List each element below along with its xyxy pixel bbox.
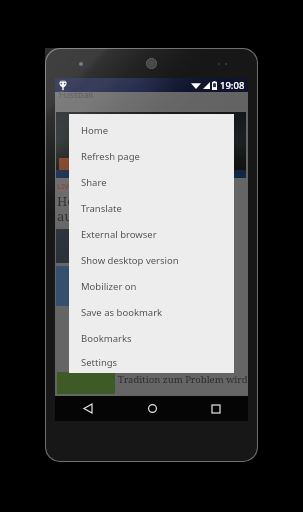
staticText: Home — [81, 124, 109, 137]
button[interactable]: Recent apps — [184, 396, 248, 421]
staticText: Refresh page — [81, 150, 140, 163]
button[interactable]: Home — [69, 117, 234, 143]
button[interactable]: Save as bookmark — [69, 299, 234, 325]
button[interactable]: Share — [69, 169, 234, 195]
button[interactable]: External browser — [69, 221, 234, 247]
staticText: Mobilizer on — [81, 280, 137, 293]
staticText: Settings — [81, 356, 118, 369]
staticText: Save as bookmark — [81, 306, 163, 319]
staticText: Heute Abend auf dem Platz — [57, 192, 142, 225]
staticText: Share — [81, 176, 107, 189]
button[interactable]: Tradition zum Problem wird — [55, 371, 248, 396]
button[interactable]: Refresh page — [69, 143, 234, 169]
staticText: External browser — [81, 228, 157, 241]
button[interactable]: Home — [120, 396, 184, 421]
staticText: LIVE — [57, 181, 74, 191]
staticText: 19:08 — [220, 79, 245, 92]
staticText: Fussball — [59, 88, 94, 100]
staticText: Translate — [81, 202, 122, 215]
button[interactable]: Bookmarks — [69, 325, 234, 351]
staticText: Show desktop version — [81, 254, 179, 267]
staticText: Tradition zum Problem wird — [118, 373, 248, 386]
button[interactable]: Show desktop version — [69, 247, 234, 273]
button[interactable]: Translate — [69, 195, 234, 221]
button[interactable]: Mobilizer on — [69, 273, 234, 299]
button[interactable]: Back — [55, 396, 120, 421]
staticText: Bookmarks — [81, 332, 132, 345]
button[interactable]: Settings — [69, 351, 234, 373]
